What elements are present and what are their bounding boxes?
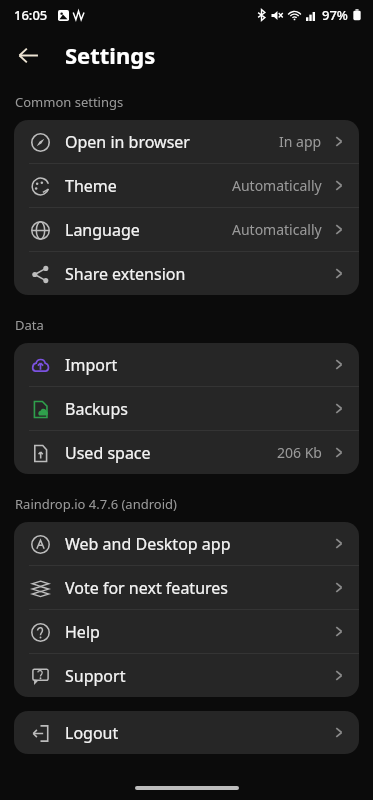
staticText: Vote for next features (65, 577, 229, 599)
button[interactable]: Language (14, 208, 359, 251)
staticText: Share extension (65, 263, 186, 285)
staticText: Automatically (232, 220, 322, 239)
button[interactable]: Backups (14, 387, 359, 430)
staticText: Used space (65, 442, 151, 464)
staticText: Help (65, 621, 100, 643)
button[interactable]: Web and Desktop app (14, 522, 359, 565)
staticText: Logout (65, 722, 119, 744)
button[interactable]: Vote for next features (14, 566, 359, 609)
staticText: 97% (322, 6, 348, 24)
button[interactable]: Open in browser (14, 120, 359, 163)
button[interactable]: Used space (14, 431, 359, 474)
staticText: Web and Desktop app (65, 533, 231, 555)
button[interactable]: Share extension (14, 252, 359, 295)
staticText: Automatically (232, 176, 322, 195)
button[interactable]: Import (14, 343, 359, 386)
button[interactable]: Support (14, 654, 359, 697)
staticText: Open in browser (65, 131, 190, 153)
staticText: 206 Kb (277, 443, 322, 462)
staticText: Settings (65, 40, 156, 70)
staticText: Support (65, 665, 126, 687)
staticText: Language (65, 219, 140, 241)
staticText: Raindrop.io 4.7.6 (android) (15, 495, 177, 513)
staticText: Data (15, 316, 44, 334)
button[interactable]: Theme (14, 164, 359, 207)
button[interactable]: Logout (14, 711, 359, 754)
staticText: Theme (65, 175, 117, 197)
button[interactable]: Help (14, 610, 359, 653)
button[interactable]: Back (6, 33, 50, 77)
staticText: Backups (65, 398, 128, 420)
staticText: 16:05 (14, 6, 48, 24)
staticText: In app (279, 132, 322, 151)
staticText: Common settings (15, 93, 124, 111)
staticText: Import (65, 354, 118, 376)
